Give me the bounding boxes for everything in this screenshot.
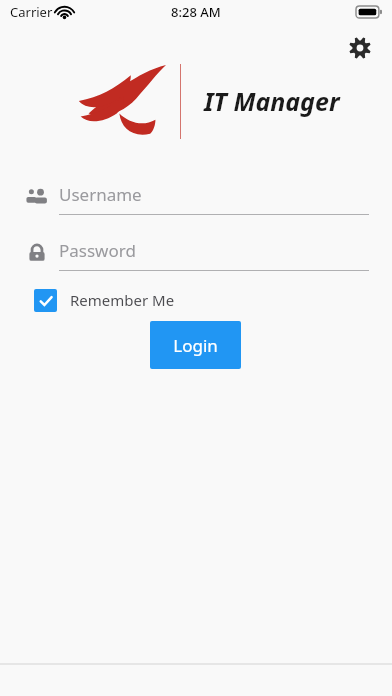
staticText: Username	[59, 183, 142, 206]
staticText: 8:28 AM	[171, 3, 221, 21]
staticText: IT Manager	[204, 84, 340, 118]
staticText: Login	[173, 334, 218, 357]
button[interactable]: Remember Me	[30, 284, 175, 316]
button[interactable]: Password	[0, 234, 392, 282]
button[interactable]: Login	[150, 321, 241, 369]
button[interactable]: Username	[0, 178, 392, 226]
staticText: Remember Me	[70, 290, 175, 310]
staticText: Password	[59, 239, 136, 262]
button[interactable]: Settings	[340, 28, 380, 68]
staticText: Carrier	[10, 3, 53, 21]
